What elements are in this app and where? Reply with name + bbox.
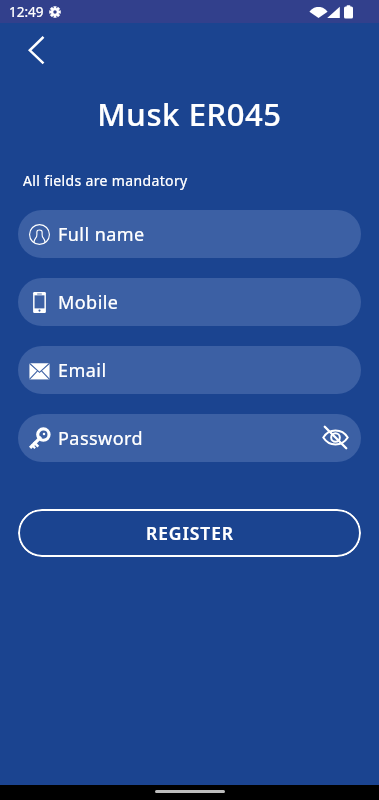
button[interactable]: Show password	[321, 423, 350, 452]
staticText: Musk ER045	[0, 93, 379, 135]
button[interactable]: REGISTER	[18, 509, 361, 557]
staticText: Full name	[58, 222, 145, 247]
staticText: All fields are mandatory	[23, 171, 188, 190]
staticText: REGISTER	[146, 521, 234, 545]
button[interactable]: Email	[18, 346, 361, 394]
button[interactable]: Full name	[18, 210, 361, 258]
button[interactable]: Password	[18, 414, 361, 462]
staticText: Email	[58, 358, 107, 383]
staticText: Mobile	[58, 290, 119, 315]
button[interactable]: Back	[14, 28, 58, 72]
button[interactable]: Mobile	[18, 278, 361, 326]
staticText: Password	[58, 426, 144, 451]
staticText: 12:49	[9, 3, 44, 21]
